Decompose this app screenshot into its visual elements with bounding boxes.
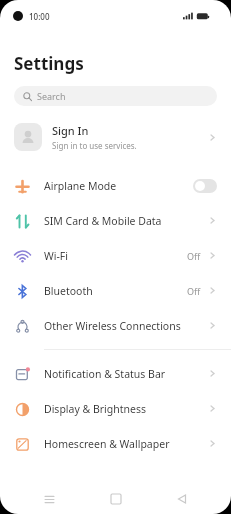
staticText: Airplane Mode	[44, 179, 193, 193]
button[interactable]: Home	[99, 484, 133, 514]
staticText: Sign in to use services.	[52, 140, 137, 151]
button[interactable]: Back	[165, 484, 199, 514]
staticText: Display & Brightness	[44, 402, 208, 416]
staticText: Search	[37, 90, 66, 102]
button[interactable]: Search	[14, 86, 217, 106]
staticText: Off	[187, 250, 201, 262]
button[interactable]: Recent apps	[32, 484, 66, 514]
staticText: Notification & Status Bar	[44, 367, 208, 381]
button[interactable]: Sign In	[0, 115, 231, 159]
staticText: Off	[187, 285, 201, 297]
button[interactable]: Airplane Mode	[0, 168, 231, 203]
staticText: 10:00	[29, 11, 50, 22]
staticText: Homescreen & Wallpaper	[44, 437, 208, 451]
staticText: Sign In	[52, 123, 89, 138]
staticText: Settings	[14, 52, 84, 75]
button[interactable]: Other Wireless Connections	[0, 308, 231, 343]
button[interactable]: SIM Card & Mobile Data	[0, 203, 231, 238]
button[interactable]: Airplane mode toggle	[193, 179, 217, 193]
button[interactable]: Wi-Fi	[0, 238, 231, 273]
button[interactable]: Notification & Status Bar	[0, 356, 231, 391]
button[interactable]: Bluetooth	[0, 273, 231, 308]
button[interactable]: Display & Brightness	[0, 391, 231, 426]
button[interactable]: Homescreen & Wallpaper	[0, 426, 231, 461]
staticText: SIM Card & Mobile Data	[44, 214, 208, 228]
staticText: Bluetooth	[44, 284, 187, 298]
staticText: Wi-Fi	[44, 249, 187, 263]
staticText: Other Wireless Connections	[44, 319, 208, 333]
